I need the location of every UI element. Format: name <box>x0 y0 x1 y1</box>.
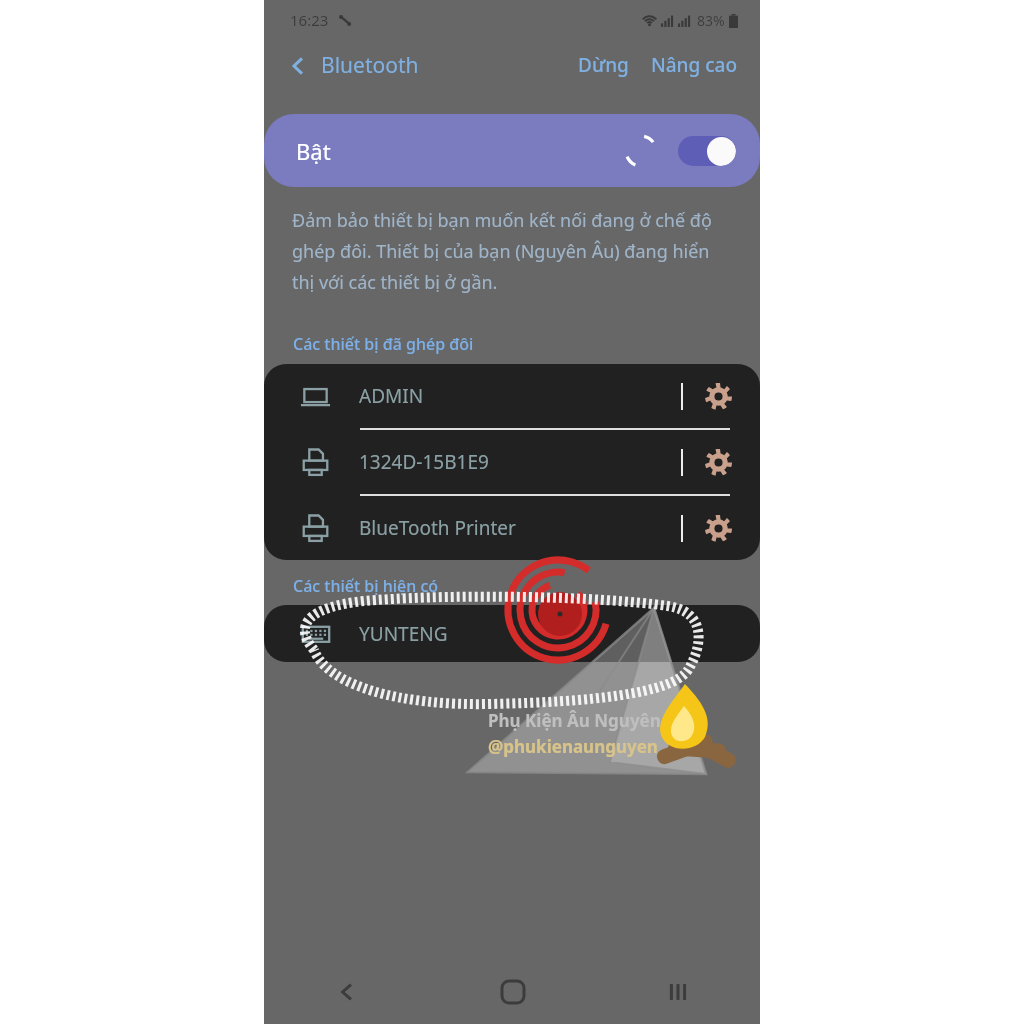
other: Back <box>288 56 308 76</box>
staticText: Nâng cao <box>651 52 738 78</box>
staticText: ADMIN <box>359 383 681 409</box>
button[interactable]: ADMIN <box>264 364 760 428</box>
staticText: 16:23 <box>290 10 329 30</box>
button[interactable]: 1324D-15B1E9 <box>264 430 760 494</box>
staticText: @phukienaunguyen <box>488 735 658 758</box>
button[interactable]: Back <box>282 45 425 86</box>
button[interactable]: Settings for 1324D-15B1E9 <box>705 449 732 476</box>
button[interactable]: Recent apps <box>595 960 760 1024</box>
staticText: YUNTENG <box>359 621 448 647</box>
staticText: Các thiết bị hiện có <box>293 575 439 597</box>
button[interactable]: YUNTENG <box>264 605 760 662</box>
staticText: Các thiết bị đã ghép đôi <box>293 333 474 355</box>
button[interactable]: Dừng <box>572 46 635 84</box>
staticText: Đảm bảo thiết bị bạn muốn kết nối đang ở… <box>292 208 736 295</box>
button[interactable]: Nâng cao <box>645 46 744 84</box>
staticText: 1324D-15B1E9 <box>359 449 681 475</box>
button[interactable]: Back <box>264 960 430 1024</box>
button[interactable]: Settings for BlueTooth Printer <box>705 515 732 542</box>
staticText: Bật <box>296 136 331 166</box>
button[interactable]: Home <box>430 960 595 1024</box>
button[interactable]: Bluetooth on toggle <box>678 136 736 166</box>
staticText: 83% <box>697 11 725 30</box>
staticText: Dừng <box>578 52 629 78</box>
staticText: Bluetooth <box>321 51 419 80</box>
staticText: BlueTooth Printer <box>359 515 681 541</box>
staticText: Phụ Kiện Âu Nguyên <box>488 709 661 732</box>
button[interactable]: Settings for ADMIN <box>705 383 732 410</box>
button[interactable]: BlueTooth Printer <box>264 496 760 560</box>
button[interactable]: Bật <box>264 114 760 187</box>
